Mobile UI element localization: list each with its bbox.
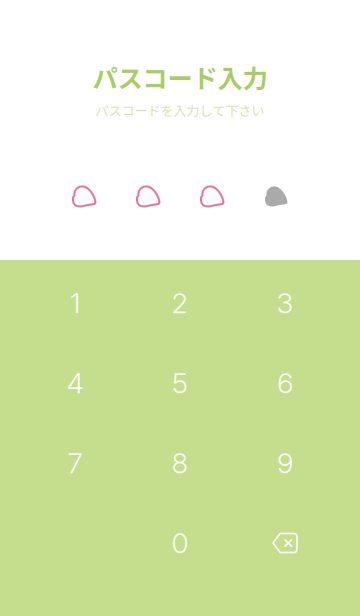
button[interactable]: 6 bbox=[232, 343, 337, 423]
button[interactable]: 9 bbox=[232, 423, 337, 503]
button[interactable]: 0 bbox=[127, 503, 232, 583]
button[interactable]: 7 bbox=[22, 423, 127, 503]
staticText: 5 bbox=[172, 366, 188, 400]
staticText: 0 bbox=[171, 526, 188, 560]
staticText: 8 bbox=[171, 446, 188, 480]
button[interactable]: 5 bbox=[127, 343, 232, 423]
staticText: 6 bbox=[277, 366, 293, 400]
button[interactable]: 1 bbox=[22, 263, 127, 343]
button[interactable]: 2 bbox=[127, 263, 232, 343]
staticText: 2 bbox=[171, 286, 188, 320]
staticText: 7 bbox=[67, 446, 82, 480]
staticText: 3 bbox=[276, 286, 293, 320]
button[interactable]: 3 bbox=[232, 263, 337, 343]
button[interactable]: 8 bbox=[127, 423, 232, 503]
button[interactable]: Delete bbox=[232, 503, 337, 583]
button[interactable]: 4 bbox=[22, 343, 127, 423]
staticText: 1 bbox=[70, 286, 80, 320]
staticText: 9 bbox=[277, 446, 293, 480]
staticText: パスコードを入力して下さい bbox=[95, 100, 264, 119]
staticText: 4 bbox=[66, 366, 83, 400]
staticText: パスコード入力 bbox=[92, 59, 267, 95]
